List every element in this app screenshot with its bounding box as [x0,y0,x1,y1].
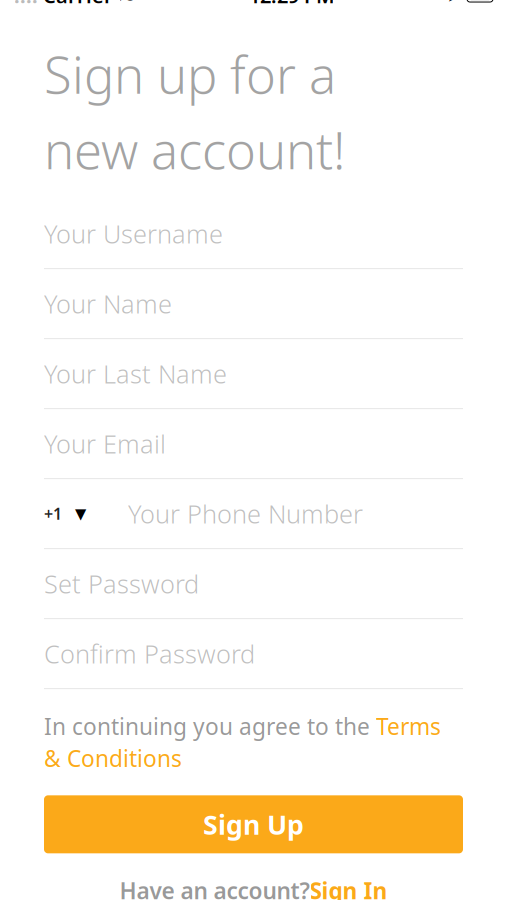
staticText: .... [14,0,38,9]
button[interactable]: Sign Up [44,795,463,853]
staticText: & Conditions [44,743,182,773]
staticText: Carrier [38,0,118,9]
staticText: In continuing you agree to the [44,711,376,741]
staticText: Your Name [44,287,172,320]
button[interactable]: Set Password [44,549,463,619]
button[interactable]: +1 [44,479,463,549]
staticText: Set Password [44,567,199,600]
staticText: Sign Up [203,807,304,842]
staticText: 12:29 PM [249,0,335,9]
staticText: ≈ [118,0,137,8]
staticText: Your Username [44,217,223,250]
staticText: Sign In [309,875,387,900]
button[interactable]: Have an account? [0,867,507,900]
button[interactable]: Your Email [44,409,463,479]
staticText: ➤ [447,0,462,5]
staticText: ▼ [70,505,86,522]
staticText: Your Email [44,427,166,460]
staticText: Terms [376,711,441,741]
button[interactable]: Confirm Password [44,619,463,689]
button[interactable]: Your Username [44,199,463,269]
staticText: Have an account? [119,875,309,900]
staticText: +1 [44,503,62,524]
button[interactable]: In continuing you agree to the [44,711,463,773]
staticText: Sign up for a [44,41,336,108]
staticText: new account! [44,116,345,183]
button[interactable]: Your Name [44,269,463,339]
staticText: Your Last Name [44,357,227,390]
staticText: Your Phone Number [128,497,363,530]
staticText: Confirm Password [44,637,255,670]
button[interactable]: Your Last Name [44,339,463,409]
